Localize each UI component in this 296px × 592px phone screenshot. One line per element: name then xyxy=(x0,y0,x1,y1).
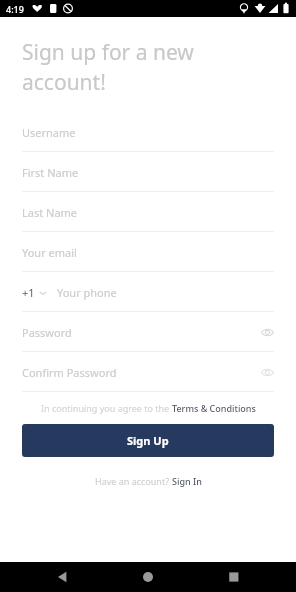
staticText: Sign Up xyxy=(127,433,169,448)
button[interactable]: Show password xyxy=(256,361,278,383)
button[interactable]: First Name xyxy=(0,152,296,192)
staticText: Sign up for a new account! xyxy=(22,38,194,96)
button[interactable]: Back xyxy=(40,562,84,592)
button[interactable]: Show password xyxy=(256,321,278,343)
staticText: Terms & Conditions xyxy=(172,402,256,414)
staticText: First Name xyxy=(22,165,79,180)
button[interactable]: Home xyxy=(126,562,170,592)
staticText: Sign In xyxy=(172,475,202,487)
staticText: Have an account? xyxy=(95,475,172,487)
staticText: Your phone xyxy=(57,285,117,300)
button[interactable]: Your email xyxy=(0,232,296,272)
button[interactable]: +1 xyxy=(0,272,296,312)
button[interactable]: Username xyxy=(0,112,296,152)
staticText: Username xyxy=(22,125,76,140)
button[interactable]: Terms & Conditions xyxy=(172,402,256,414)
button[interactable]: Sign Up xyxy=(22,424,274,457)
button[interactable]: Last Name xyxy=(0,192,296,232)
staticText: +1 xyxy=(22,285,35,300)
button[interactable]: Sign In xyxy=(172,475,202,487)
button[interactable]: Confirm Password xyxy=(0,352,296,392)
staticText: In continuing you agree to the xyxy=(41,402,172,414)
staticText: 4:19 xyxy=(6,3,24,15)
staticText: Your email xyxy=(22,245,77,260)
button[interactable]: Password xyxy=(0,312,296,352)
staticText: Password xyxy=(22,325,72,340)
staticText: Last Name xyxy=(22,205,78,220)
staticText: Confirm Password xyxy=(22,365,117,380)
button[interactable]: Recent apps xyxy=(212,562,256,592)
